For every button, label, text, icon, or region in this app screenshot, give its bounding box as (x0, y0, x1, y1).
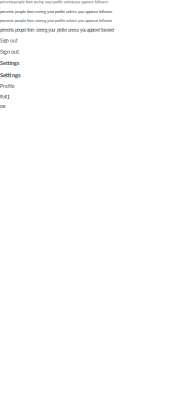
staticText: Profile (0, 83, 14, 89)
staticText: 9:41 (0, 94, 10, 100)
staticText: prevents people from seeing your profile… (0, 28, 115, 33)
staticText: Off (0, 105, 5, 109)
staticText: prevents people from seeing your profile… (0, 9, 112, 14)
staticText: Sign out (0, 38, 18, 43)
staticText: Sign out (0, 48, 19, 55)
staticText: Settings (0, 60, 19, 66)
staticText: Settings (0, 71, 21, 78)
staticText: prevents people from seeing your profile… (0, 19, 112, 23)
staticText: prevents people from seeing your profile… (0, 0, 108, 4)
